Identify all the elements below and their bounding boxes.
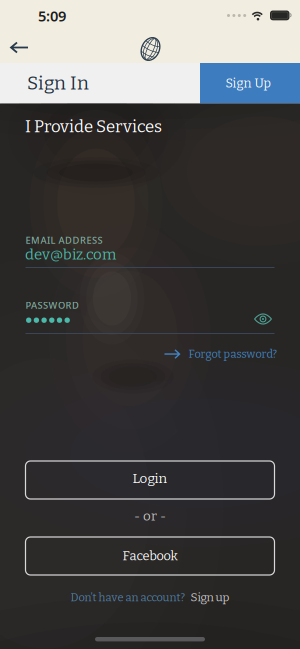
button[interactable]: Login [25, 461, 274, 499]
button[interactable]: Sign In [0, 63, 200, 103]
button[interactable]: Sign up [190, 590, 229, 604]
staticText: Sign In [27, 72, 89, 94]
staticText: 5:09 [38, 6, 66, 25]
staticText: Sign Up [225, 76, 270, 91]
button[interactable]: Show password [254, 313, 272, 324]
staticText: EMAIL ADDRESS [25, 234, 102, 246]
staticText: PASSWORD [25, 299, 79, 311]
staticText: dev@biz.com [25, 245, 116, 264]
staticText: Sign up [190, 590, 229, 604]
button[interactable]: Sign Up [200, 63, 300, 103]
staticText: Forgot password? [188, 347, 277, 361]
button[interactable]: Back [1, 34, 38, 61]
staticText: Don’t have an account? [70, 591, 185, 604]
button[interactable]: Forgot password [164, 347, 277, 361]
staticText: Facebook [122, 548, 177, 564]
staticText: Login [132, 470, 167, 487]
button[interactable]: Facebook [25, 537, 274, 575]
staticText: - or - [134, 508, 166, 524]
staticText: I Provide Services [25, 116, 162, 137]
